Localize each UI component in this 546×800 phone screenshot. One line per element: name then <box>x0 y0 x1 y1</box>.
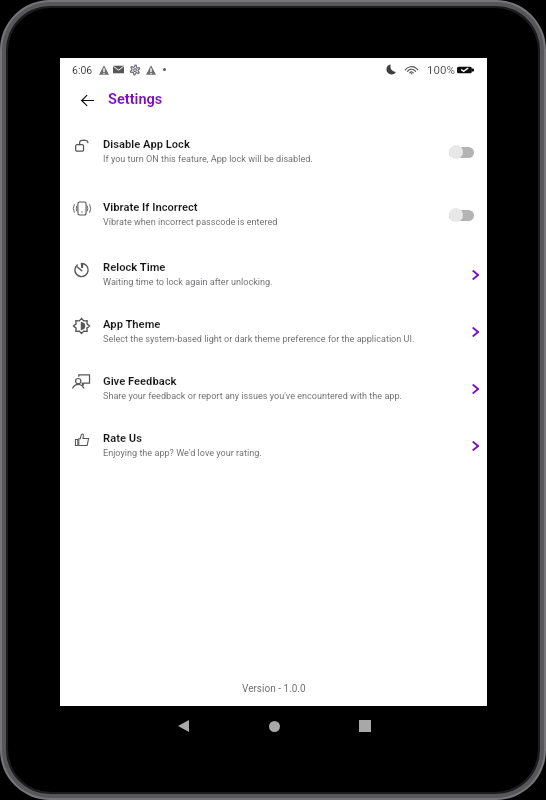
button[interactable]: Toggle <box>442 205 474 225</box>
button[interactable]: Vibrate If Incorrect <box>60 183 487 246</box>
button[interactable]: Open <box>465 379 485 399</box>
button[interactable]: Back <box>166 709 200 743</box>
button[interactable]: Open <box>465 265 485 285</box>
staticText: Enjoying the app? We'd love your rating. <box>103 448 262 459</box>
button[interactable]: Open <box>465 436 485 456</box>
staticText: Select the system-based light or dark th… <box>103 334 415 345</box>
button[interactable]: Rate Us <box>60 417 487 474</box>
staticText: 100% <box>427 63 455 76</box>
button[interactable]: App Theme <box>60 303 487 360</box>
button[interactable]: Open <box>465 322 485 342</box>
button[interactable]: Back <box>73 86 101 114</box>
staticText: App Theme <box>103 318 161 331</box>
staticText: If you turn ON this feature, App lock wi… <box>103 154 313 165</box>
staticText: Rate Us <box>103 432 142 445</box>
staticText: Disable App Lock <box>103 138 190 151</box>
staticText: Vibrate when incorrect passcode is enter… <box>103 217 278 228</box>
staticText: Give Feedback <box>103 375 177 388</box>
staticText: 6:06 <box>72 64 93 76</box>
button[interactable]: Toggle <box>442 142 474 162</box>
button[interactable]: Disable App Lock <box>60 120 487 183</box>
button[interactable]: Relock Time <box>60 246 487 303</box>
button[interactable]: Recent apps <box>348 709 382 743</box>
staticText: Share your feedback or report any issues… <box>103 391 402 402</box>
button[interactable]: Home <box>257 709 291 743</box>
staticText: Version - 1.0.0 <box>242 683 306 695</box>
staticText: Settings <box>108 91 163 108</box>
staticText: Waiting time to lock again after unlocki… <box>103 277 273 288</box>
button[interactable]: Give Feedback <box>60 360 487 417</box>
staticText: Relock Time <box>103 261 166 274</box>
staticText: Vibrate If Incorrect <box>103 201 198 214</box>
